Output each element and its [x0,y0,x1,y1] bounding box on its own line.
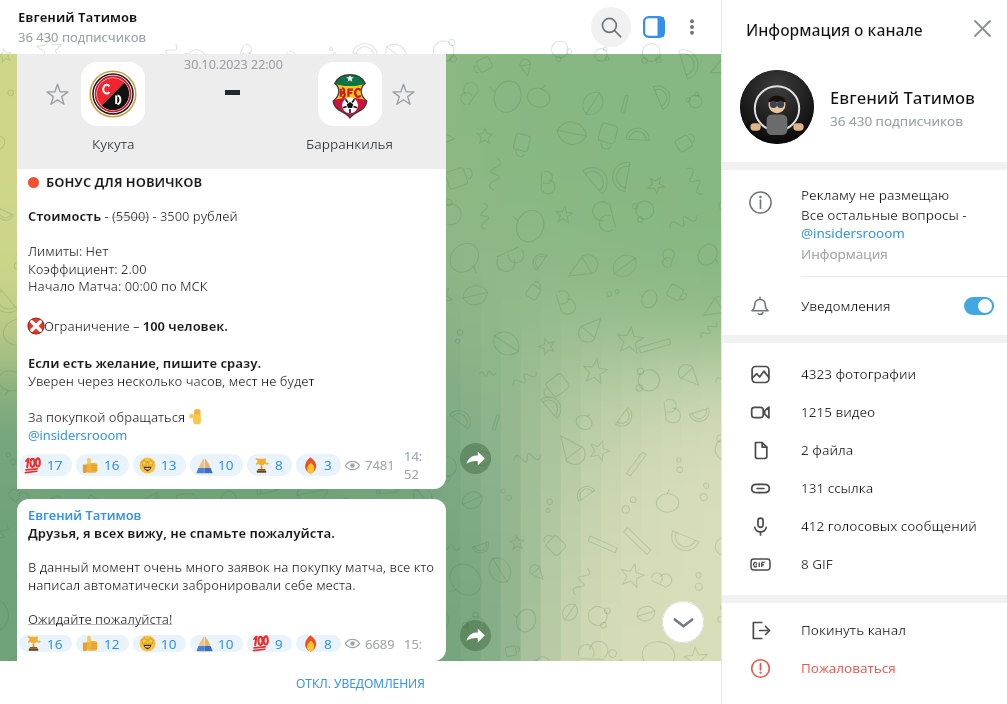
button[interactable]: 8 [247,454,292,476]
button[interactable]: 10 [190,454,243,476]
staticText: 9 [275,635,283,652]
staticText: 16 [47,635,63,652]
staticText: 10 [218,635,234,652]
staticText: В данный момент очень много заявок на по… [28,558,435,594]
staticText: 2 файла [801,441,854,459]
button[interactable]: 16 [76,454,129,476]
staticText: Кукута [92,135,135,153]
staticText: Пожаловаться [801,659,896,677]
staticText: БОНУС ДЛЯ НОВИЧКОВ [46,173,203,191]
button[interactable]: 10 [190,635,243,652]
button[interactable]: Favorite [385,76,421,112]
button[interactable]: 2 файла [722,431,1007,469]
button[interactable]: 8 GIF [722,545,1007,583]
button[interactable]: 9 [247,635,292,652]
staticText: 7481 [365,456,395,474]
button[interactable]: Search [591,7,631,47]
staticText: 14:52 [404,447,427,483]
staticText: 15:23 [404,635,427,652]
button[interactable]: Scroll to bottom [662,601,704,643]
button[interactable]: 12 [76,635,129,652]
staticText: Уверен через несколько часов, мест не бу… [28,372,315,390]
staticText: 131 ссылка [801,479,874,497]
button[interactable]: Уведомления [722,277,1007,335]
staticText: ОТКЛ. УВЕДОМЛЕНИЯ [296,675,425,691]
button[interactable]: 4323 фотографии [722,355,1007,393]
staticText: Информация о канале [746,19,923,40]
button[interactable]: 16 [19,635,72,652]
staticText: Рекламу не размещаю [801,186,950,204]
staticText: 1215 видео [801,403,876,421]
staticText: Покинуть канал [801,621,906,639]
staticText: 16 [104,456,120,474]
staticText: Информация [801,245,888,263]
staticText: Все остальные вопросы - [801,206,967,224]
button[interactable]: ОТКЛ. УВЕДОМЛЕНИЯ [0,661,721,704]
staticText: Стоимость - (5500) - 3500 рублей [28,207,238,225]
staticText: Евгений Татимов [18,8,138,26]
staticText: 12 [104,635,120,652]
staticText: 4323 фотографии [801,365,917,383]
button[interactable]: @insidersrooom [801,224,905,242]
button[interactable]: Favorite [39,76,75,112]
staticText: Барранкилья [306,135,394,153]
button[interactable]: 17 [19,454,72,476]
staticText: Друзья, я всех вижу, не спамьте пожалуйс… [28,524,336,542]
button[interactable]: 13 [133,454,186,476]
button[interactable] [722,174,1007,270]
staticText: Ожидайте пожалуйста! [28,610,173,628]
staticText: 30.10.2023 22:00 [184,56,283,73]
staticText: 36 430 подписчиков [18,28,146,46]
staticText: 17 [47,456,63,474]
button[interactable]: Toggle info panel [634,7,674,47]
staticText: Лимиты: Нет Коэффициент: 2.00 Начало Мат… [28,242,208,295]
button[interactable]: Forward message [460,620,491,651]
staticText: 3 [324,456,332,474]
staticText: Евгений Татимов [28,506,142,524]
button[interactable]: Forward message [460,443,491,474]
staticText: 6689 [365,635,395,652]
staticText: 13 [161,456,177,474]
staticText: 10 [218,456,234,474]
button[interactable]: 8 [296,635,341,652]
button[interactable]: 412 голосовых сообщений [722,507,1007,545]
staticText: Евгений Татимов [830,86,976,108]
staticText: 8 GIF [801,555,833,573]
button[interactable]: 3 [296,454,341,476]
staticText: 412 голосовых сообщений [801,517,977,535]
staticText: 36 430 подписчиков [830,112,963,130]
button[interactable]: 10 [133,635,186,652]
staticText: Уведомления [801,297,891,315]
button[interactable]: Покинуть канал [722,611,1007,649]
staticText: 8 [324,635,332,652]
staticText: Ограничение – 100 человек. [44,317,228,335]
staticText: За покупкой обращаться [28,408,189,426]
button[interactable]: 131 ссылка [722,469,1007,507]
button[interactable]: Notifications toggle [964,297,994,315]
staticText: 8 [275,456,283,474]
button[interactable]: More options [674,9,710,45]
button[interactable]: @insidersrooom [28,426,128,444]
button[interactable]: Close [964,10,1000,46]
button[interactable]: Пожаловаться [722,649,1007,687]
staticText: Если есть желание, пишите сразу. [28,354,262,372]
staticText: 10 [161,635,177,652]
button[interactable]: 1215 видео [722,393,1007,431]
